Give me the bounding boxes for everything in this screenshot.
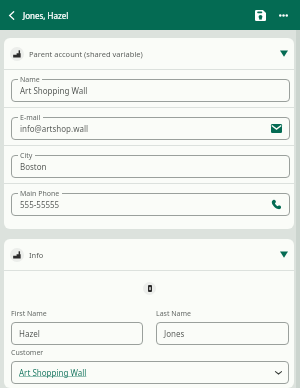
button[interactable]: Back [0, 0, 22, 30]
staticText: Main Phone [20, 189, 60, 199]
staticText: Info [29, 250, 44, 260]
staticText: Name [20, 75, 40, 85]
button[interactable]: Change photo [143, 282, 156, 295]
staticText: Last Name [156, 309, 192, 319]
staticText: Parent account (shared variable) [29, 49, 143, 59]
staticText: 555-55555 [20, 199, 60, 210]
staticText: Art Shopping Wall [20, 85, 88, 96]
button[interactable]: Parent account (shared variable) [4, 38, 294, 69]
staticText: Customer [11, 348, 44, 358]
button[interactable]: 555-55555 [4, 184, 294, 221]
button[interactable]: Art Shopping Wall [4, 70, 294, 108]
button[interactable]: More options [272, 0, 294, 30]
staticText: First Name [11, 309, 47, 319]
button[interactable]: Save [248, 0, 272, 30]
staticText: Jones, Hazel [23, 10, 69, 21]
button[interactable]: Info [4, 239, 294, 270]
staticText: Hazel [19, 328, 40, 339]
button[interactable]: Customer [11, 348, 289, 384]
button[interactable]: Last Name [156, 309, 289, 345]
button[interactable]: Boston [4, 146, 294, 184]
staticText: City [20, 151, 33, 161]
staticText: Boston [20, 161, 47, 172]
staticText: E-mail [20, 113, 41, 123]
staticText: Jones [164, 328, 185, 339]
staticText: Art Shopping Wall [19, 367, 87, 378]
staticText: info@artshop.wall [20, 123, 89, 134]
button[interactable]: info@artshop.wall [4, 108, 294, 146]
button[interactable]: First Name [11, 309, 143, 345]
